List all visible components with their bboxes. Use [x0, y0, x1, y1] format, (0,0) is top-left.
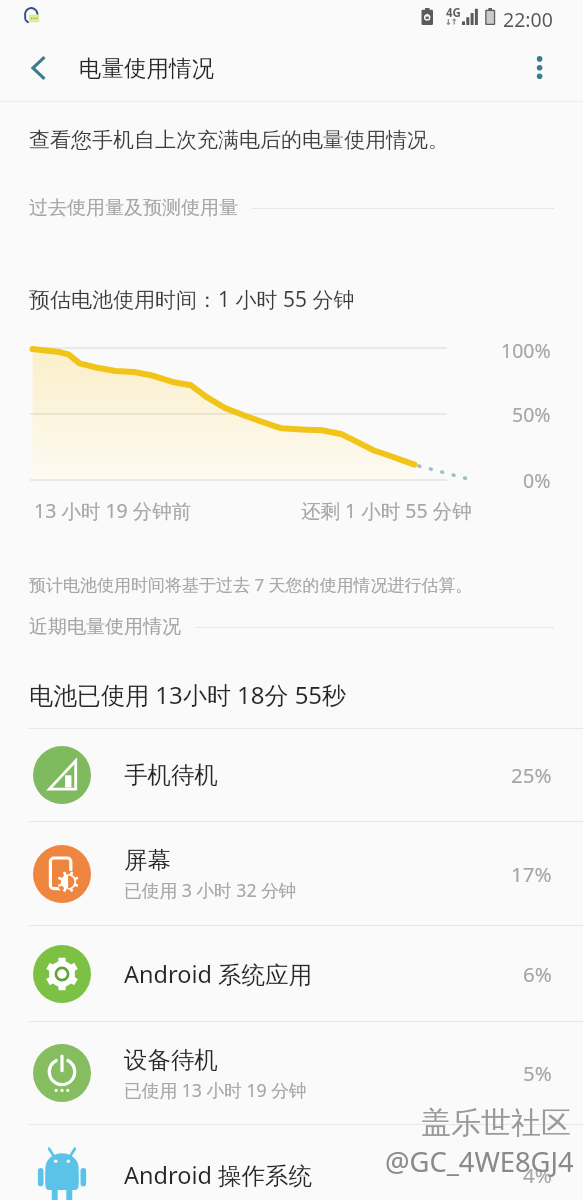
- button[interactable]: 设备待机: [0, 1022, 583, 1124]
- staticText: 还剩 1 小时 55 分钟: [301, 497, 472, 524]
- staticText: 0%: [523, 467, 551, 494]
- staticText: 近期电量使用情况: [29, 615, 181, 639]
- button[interactable]: Back: [9, 39, 67, 97]
- staticText: 4%: [523, 1161, 552, 1189]
- staticText: 22:00: [503, 6, 553, 33]
- button[interactable]: More options: [512, 39, 568, 95]
- staticText: 50%: [512, 401, 551, 428]
- staticText: Android 操作系统: [124, 1159, 313, 1191]
- staticText: 预计电池使用时间将基于过去 7 天您的使用情况进行估算。: [29, 573, 473, 596]
- staticText: @GC_4WE8GJ4: [385, 1143, 574, 1180]
- staticText: 设备待机: [124, 1045, 218, 1075]
- staticText: 已使用 13 小时 19 分钟: [124, 1078, 307, 1102]
- staticText: 预估电池使用时间：1 小时 55 分钟: [29, 285, 355, 314]
- staticText: 5%: [523, 1059, 552, 1087]
- staticText: 13 小时 19 分钟前: [34, 497, 192, 524]
- staticText: 过去使用量及预测使用量: [29, 196, 238, 220]
- staticText: 4G: [446, 5, 461, 21]
- staticText: 17%: [511, 860, 552, 888]
- staticText: 25%: [511, 761, 552, 789]
- staticText: 查看您手机自上次充满电后的电量使用情况。: [29, 127, 449, 153]
- staticText: 电池已使用 13小时 18分 55秒: [29, 678, 347, 711]
- button[interactable]: 手机待机: [0, 729, 583, 821]
- staticText: Android 系统应用: [124, 958, 313, 990]
- button[interactable]: Android 系统应用: [0, 926, 583, 1021]
- staticText: 电量使用情况: [79, 54, 214, 82]
- staticText: 屏幕: [124, 845, 171, 875]
- button[interactable]: Android 操作系统: [0, 1125, 583, 1200]
- staticText: 手机待机: [124, 760, 218, 790]
- staticText: 6%: [523, 960, 552, 988]
- staticText: 盖乐世社区: [421, 1104, 571, 1142]
- button[interactable]: 屏幕: [0, 822, 583, 925]
- staticText: 100%: [501, 337, 551, 364]
- staticText: 已使用 3 小时 32 分钟: [124, 878, 297, 902]
